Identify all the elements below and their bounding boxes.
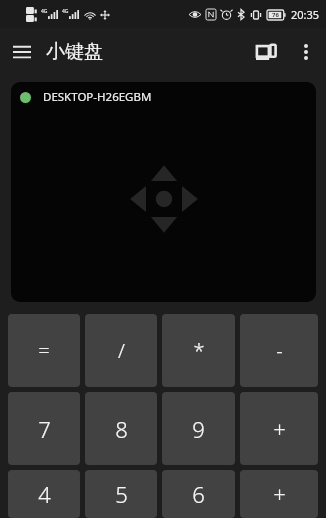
button[interactable]: 8 (85, 392, 157, 465)
staticText: 7 (38, 414, 51, 444)
staticText: 6 (192, 479, 205, 509)
button[interactable]: 9 (162, 392, 235, 465)
staticText: 小键盘 (46, 40, 103, 64)
staticText: / (118, 337, 125, 364)
staticText: DESKTOP-H26EGBM (43, 89, 152, 105)
staticText: 20:35 (291, 7, 320, 22)
button[interactable]: / (85, 314, 157, 387)
staticText: 76 (272, 11, 279, 19)
staticText: = (38, 337, 50, 364)
staticText: + (273, 414, 286, 444)
staticText: 4G (41, 8, 48, 15)
staticText: - (276, 337, 283, 364)
button[interactable]: 5 (85, 470, 157, 518)
button[interactable]: Open navigation menu (4, 34, 40, 70)
button[interactable]: - (240, 314, 318, 387)
button[interactable]: + (240, 392, 318, 465)
staticText: 9 (192, 414, 205, 444)
button[interactable]: * (162, 314, 235, 387)
button[interactable]: + (240, 470, 318, 518)
staticText: + (273, 479, 286, 509)
button[interactable]: 4 (8, 470, 80, 518)
staticText: 5 (115, 479, 128, 509)
button[interactable]: More options (286, 32, 326, 72)
button[interactable]: 7 (8, 392, 80, 465)
staticText: 8 (115, 414, 128, 444)
staticText: 4G (62, 8, 69, 15)
button[interactable]: Touchpad area (11, 82, 316, 302)
button[interactable]: = (8, 314, 80, 387)
staticText: 4 (38, 479, 51, 509)
staticText: * (193, 337, 205, 364)
button[interactable]: 6 (162, 470, 235, 518)
button[interactable]: Connected devices (246, 32, 286, 72)
